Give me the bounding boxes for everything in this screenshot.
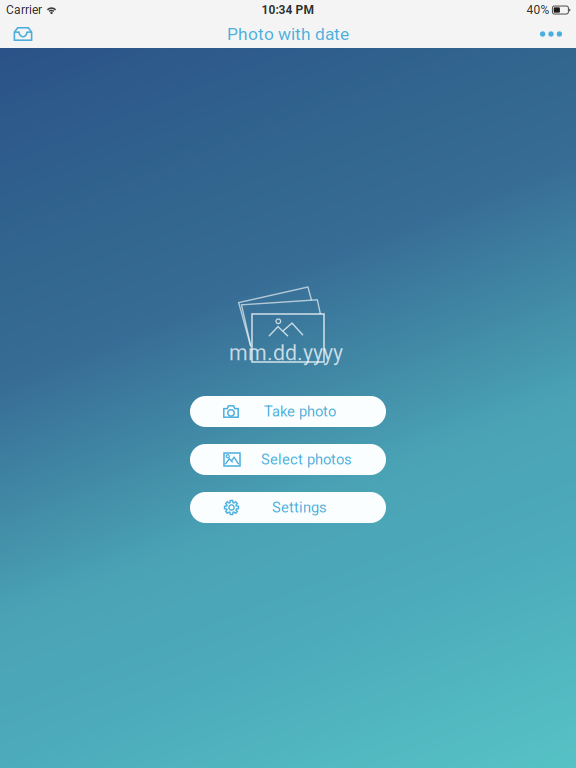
- staticText: Take photo: [264, 403, 336, 420]
- staticText: Carrier: [6, 3, 42, 17]
- button[interactable]: Take photo: [190, 396, 386, 427]
- staticText: Settings: [272, 499, 327, 516]
- staticText: mm.dd.yyyy: [229, 340, 343, 365]
- button[interactable]: Settings: [190, 492, 386, 523]
- staticText: 10:34 PM: [261, 3, 314, 17]
- button[interactable]: Select photos: [190, 444, 386, 475]
- button[interactable]: Mail: [0, 20, 46, 48]
- staticText: 40%: [526, 3, 549, 17]
- staticText: Photo with date: [227, 24, 349, 44]
- staticText: Select photos: [261, 451, 352, 468]
- button[interactable]: More options: [526, 20, 576, 48]
